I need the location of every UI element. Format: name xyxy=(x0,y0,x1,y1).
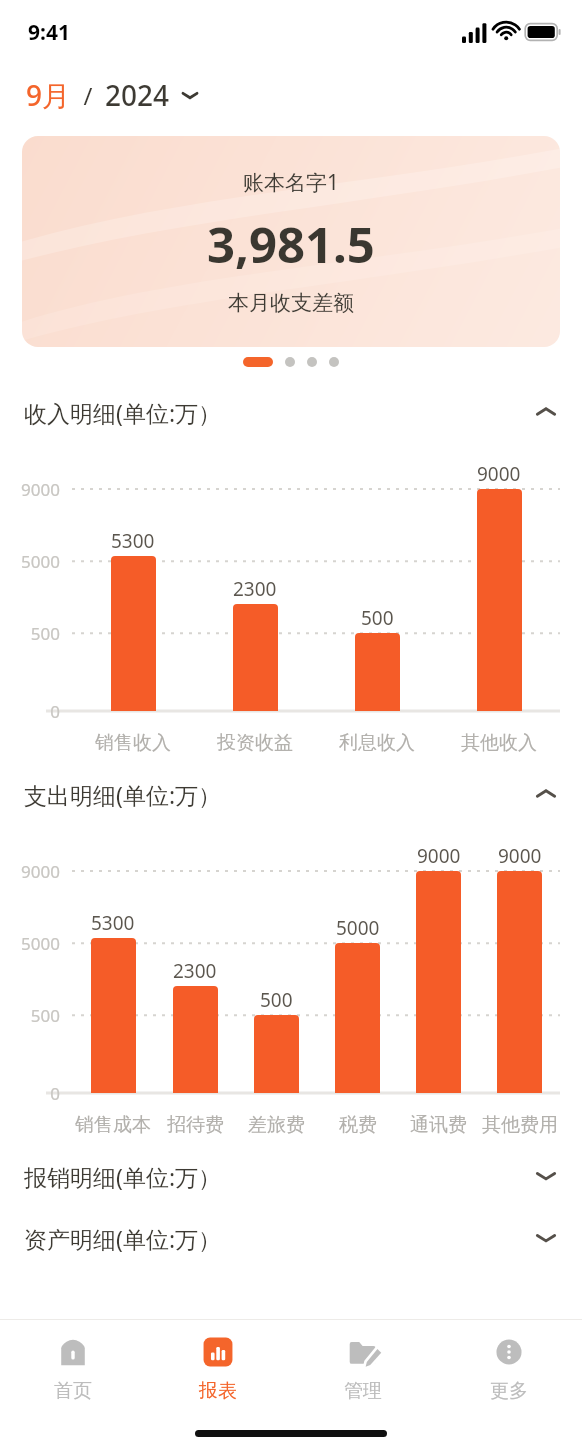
staticText: 9:41 xyxy=(28,18,70,47)
staticText: 9000 xyxy=(0,478,60,500)
staticText: 资产明细(单位:万） xyxy=(24,1223,222,1254)
other: Collapse section xyxy=(534,404,558,420)
staticText: 9000 xyxy=(498,843,542,869)
staticText: 2300 xyxy=(233,576,277,602)
staticText: 5000 xyxy=(0,932,60,954)
staticText: 5300 xyxy=(111,528,155,554)
button[interactable]: More xyxy=(436,1320,582,1416)
button[interactable]: 资产明细(单位:万） xyxy=(0,1207,582,1269)
other: Expand section xyxy=(534,1230,558,1246)
other: Collapse section xyxy=(534,786,558,802)
staticText: 9000 xyxy=(417,843,461,869)
staticText: 管理 xyxy=(344,1379,382,1403)
staticText: 首页 xyxy=(54,1379,92,1403)
staticText: / xyxy=(71,79,105,112)
staticText: 销售收入 xyxy=(95,731,171,755)
staticText: 3,981.5 xyxy=(207,211,375,278)
staticText: 2024 xyxy=(105,76,170,114)
staticText: 2300 xyxy=(173,958,217,984)
button[interactable]: 账本名字1 xyxy=(22,136,560,347)
staticText: 0 xyxy=(0,700,60,722)
staticText: 账本名字1 xyxy=(243,168,340,197)
staticText: 500 xyxy=(0,1004,60,1026)
staticText: 其他收入 xyxy=(461,731,537,755)
staticText: 通讯费 xyxy=(410,1113,467,1137)
button[interactable]: Home xyxy=(0,1320,145,1416)
staticText: 投资收益 xyxy=(217,731,293,755)
staticText: 500 xyxy=(260,987,293,1013)
staticText: 报表 xyxy=(199,1379,237,1403)
staticText: 报销明细(单位:万） xyxy=(24,1161,222,1192)
staticText: 0 xyxy=(0,1082,60,1104)
staticText: 更多 xyxy=(490,1379,528,1403)
staticText: 招待费 xyxy=(167,1113,224,1137)
button[interactable]: Manage xyxy=(290,1320,436,1416)
staticText: 500 xyxy=(361,605,394,631)
staticText: 5000 xyxy=(0,550,60,572)
staticText: 其他费用 xyxy=(482,1113,558,1137)
staticText: 销售成本 xyxy=(75,1113,151,1137)
staticText: 税费 xyxy=(339,1113,377,1137)
button[interactable]: 9月 xyxy=(0,64,582,126)
staticText: 利息收入 xyxy=(339,731,415,755)
staticText: 差旅费 xyxy=(248,1113,305,1137)
button[interactable]: 报销明细(单位:万） xyxy=(0,1145,582,1207)
other: Home xyxy=(54,1333,92,1371)
staticText: 5300 xyxy=(91,910,135,936)
staticText: 5000 xyxy=(336,915,380,941)
button[interactable]: Reports xyxy=(145,1320,290,1416)
staticText: 9000 xyxy=(477,461,521,487)
staticText: 本月收支差额 xyxy=(228,290,354,316)
button[interactable]: 支出明细(单位:万） xyxy=(0,763,582,825)
other: Reports xyxy=(199,1333,237,1371)
other: More xyxy=(490,1333,528,1371)
button[interactable]: 收入明细(单位:万） xyxy=(0,381,582,443)
staticText: 收入明细(单位:万） xyxy=(24,397,222,428)
other: Manage xyxy=(344,1333,382,1371)
staticText: 9000 xyxy=(0,860,60,882)
staticText: 9月 xyxy=(26,76,71,114)
staticText: 500 xyxy=(0,622,60,644)
other: Expand section xyxy=(534,1168,558,1184)
staticText: 支出明细(单位:万） xyxy=(24,779,222,810)
